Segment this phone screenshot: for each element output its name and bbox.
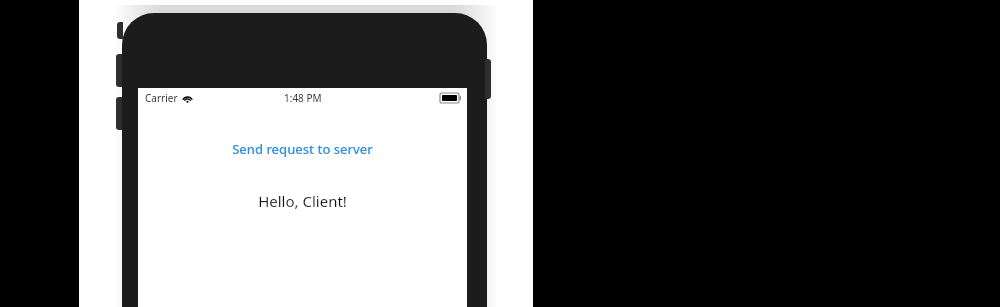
- button[interactable]: Silent switch: [117, 22, 123, 39]
- staticText: Send request to server: [232, 140, 373, 158]
- staticText: 1:48 PM: [284, 91, 322, 105]
- button[interactable]: Send request to server: [224, 136, 381, 162]
- button[interactable]: Volume up: [116, 54, 122, 87]
- button[interactable]: Volume down: [116, 97, 122, 130]
- staticText: Carrier: [145, 91, 178, 105]
- button[interactable]: Power: [485, 59, 491, 99]
- staticText: Hello, Client!: [258, 191, 347, 211]
